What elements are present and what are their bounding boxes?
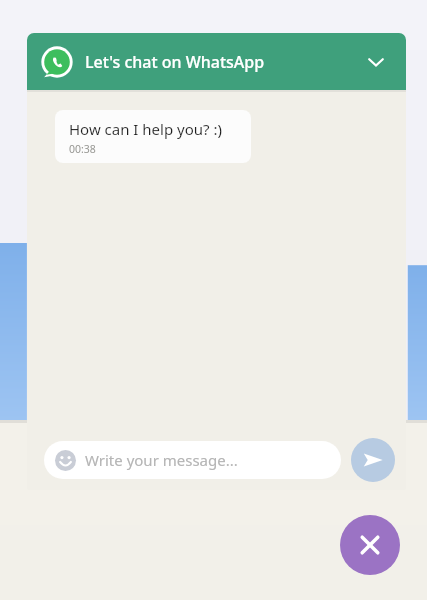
- button[interactable]: Send message: [351, 438, 395, 482]
- button[interactable]: Collapse chat: [360, 46, 392, 78]
- staticText: Write your message...: [85, 450, 238, 470]
- button[interactable]: Write your message...: [44, 441, 341, 479]
- staticText: How can I help you? :): [69, 119, 223, 139]
- button[interactable]: Close chat: [340, 515, 400, 575]
- staticText: Let's chat on WhatsApp: [85, 51, 265, 73]
- staticText: 00:38: [69, 142, 96, 156]
- button[interactable]: Let's chat on WhatsApp: [27, 33, 406, 90]
- button[interactable]: How can I help you? :): [55, 110, 251, 163]
